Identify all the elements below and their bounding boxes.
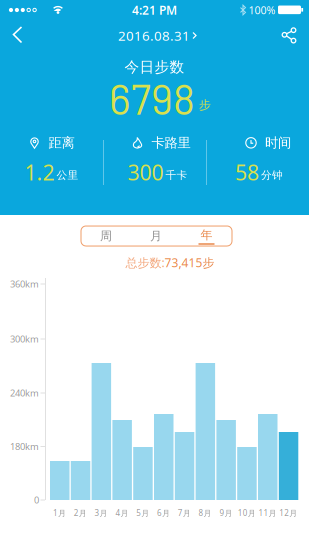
- staticText: 4月: [115, 508, 128, 518]
- staticText: 100%: [248, 3, 275, 17]
- staticText: 300: [127, 158, 163, 186]
- staticText: 1.2: [24, 158, 54, 186]
- staticText: 卡路里: [151, 135, 190, 151]
- staticText: 总步数:: [125, 254, 164, 270]
- staticText: 1月: [53, 508, 66, 518]
- staticText: 4:21 PM: [132, 2, 177, 18]
- staticText: 千卡: [165, 169, 187, 182]
- staticText: 5月: [136, 508, 149, 518]
- staticText: 今日步数: [124, 58, 184, 76]
- button[interactable]: 2016.08.31: [118, 20, 197, 51]
- staticText: 10月: [238, 508, 256, 518]
- staticText: 300km: [10, 333, 39, 345]
- button[interactable]: 年: [181, 226, 232, 246]
- staticText: 2月: [74, 508, 87, 518]
- button[interactable]: Back: [0, 20, 36, 51]
- staticText: 公里: [56, 169, 78, 182]
- staticText: 240km: [10, 387, 39, 399]
- staticText: 8月: [199, 508, 212, 518]
- button[interactable]: 周: [81, 226, 131, 246]
- staticText: 分钟: [261, 169, 283, 182]
- staticText: 3月: [95, 508, 108, 518]
- staticText: 360km: [10, 278, 39, 290]
- staticText: 月: [150, 229, 162, 243]
- staticText: 年: [200, 228, 212, 242]
- staticText: 0: [34, 494, 39, 506]
- staticText: 11月: [258, 508, 276, 518]
- staticText: 6月: [157, 508, 170, 518]
- staticText: 7月: [178, 508, 191, 518]
- button[interactable]: Share: [277, 23, 301, 47]
- staticText: 58: [235, 158, 259, 186]
- staticText: 6798: [109, 73, 195, 123]
- staticText: 步: [199, 98, 211, 112]
- staticText: 时间: [265, 135, 291, 151]
- staticText: 73,415步: [164, 254, 214, 270]
- staticText: 180km: [10, 440, 39, 453]
- button[interactable]: 月: [131, 226, 181, 246]
- staticText: 距离: [48, 135, 74, 151]
- staticText: 周: [100, 229, 112, 243]
- staticText: 12月: [279, 508, 297, 518]
- staticText: 9月: [219, 508, 232, 518]
- staticText: 2016.08.31: [118, 27, 190, 44]
